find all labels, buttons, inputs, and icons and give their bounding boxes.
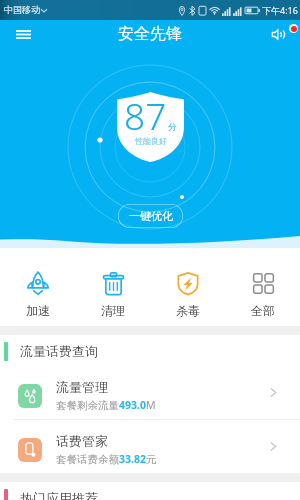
button[interactable]: 清理 <box>75 248 150 326</box>
staticText: 流量管理 <box>56 379 108 395</box>
staticText: 话费管家 <box>56 433 108 449</box>
button[interactable]: Menu <box>8 20 38 48</box>
staticText: 杀毒 <box>176 303 200 318</box>
staticText: 中国移动 <box>4 4 40 15</box>
staticText: 加速 <box>26 303 50 318</box>
button[interactable]: 一键优化 <box>118 204 183 228</box>
button[interactable]: Sound <box>265 21 291 47</box>
staticText: 套餐话费余额33.82元 <box>56 452 157 466</box>
button[interactable]: 加速 <box>0 248 75 326</box>
staticText: 安全先锋 <box>118 24 182 44</box>
button[interactable]: 流量管理 <box>0 366 300 419</box>
staticText: 87 <box>124 90 167 140</box>
button[interactable]: 话费管家 <box>0 420 300 473</box>
staticText: 清理 <box>101 303 125 318</box>
staticText: 性能良好 <box>135 136 167 146</box>
button[interactable]: 杀毒 <box>150 248 225 326</box>
staticText: 套餐剩余流量493.0M <box>56 398 156 412</box>
staticText: 全部 <box>251 303 275 318</box>
staticText: 分 <box>168 121 177 132</box>
staticText: 流量话费查询 <box>20 343 98 359</box>
button[interactable]: 全部 <box>225 248 300 326</box>
staticText: 一键优化 <box>129 209 173 223</box>
staticText: 热门应用推荐 <box>20 490 98 500</box>
staticText: 下午4:16 <box>262 4 298 16</box>
